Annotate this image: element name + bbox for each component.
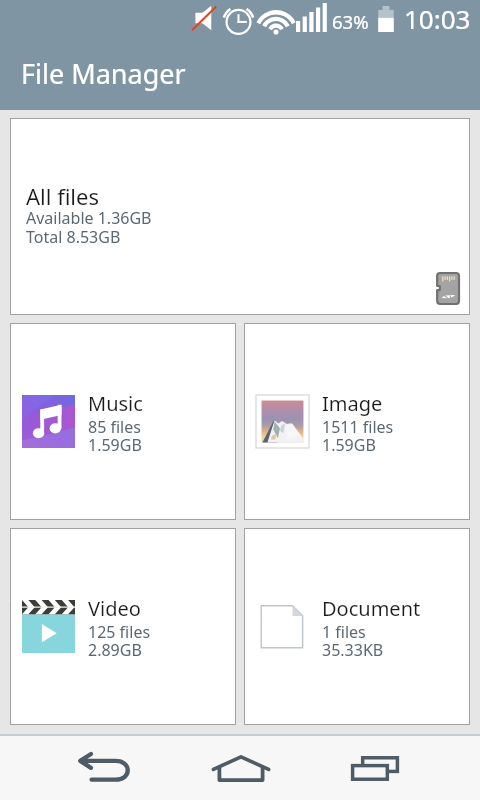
staticText: Document: [322, 595, 421, 622]
staticText: 35.33KB: [322, 639, 384, 661]
staticText: All files: [26, 181, 99, 211]
staticText: 1.59GB: [88, 434, 142, 456]
staticText: 125 files: [88, 621, 151, 643]
staticText: Video: [88, 595, 141, 622]
button[interactable]: Recent apps: [327, 736, 423, 800]
button[interactable]: Image: [244, 323, 470, 520]
staticText: Available 1.36GB: [26, 207, 152, 229]
button[interactable]: Music: [10, 323, 236, 520]
button[interactable]: Home: [193, 736, 289, 800]
button[interactable]: Document: [244, 528, 470, 725]
button[interactable]: Back: [58, 736, 154, 800]
staticText: 1 files: [322, 621, 366, 643]
button[interactable]: Video: [10, 528, 236, 725]
staticText: 2.89GB: [88, 639, 142, 661]
staticText: Music: [88, 390, 143, 417]
staticText: 85 files: [88, 416, 141, 438]
staticText: Image: [322, 390, 383, 417]
button[interactable]: All files: [10, 118, 470, 315]
staticText: File Manager: [21, 55, 186, 92]
staticText: 1511 files: [322, 416, 394, 438]
staticText: 10:03: [404, 1, 471, 36]
staticText: 1.59GB: [322, 434, 376, 456]
staticText: Total 8.53GB: [26, 226, 121, 248]
staticText: 63%: [332, 9, 369, 34]
